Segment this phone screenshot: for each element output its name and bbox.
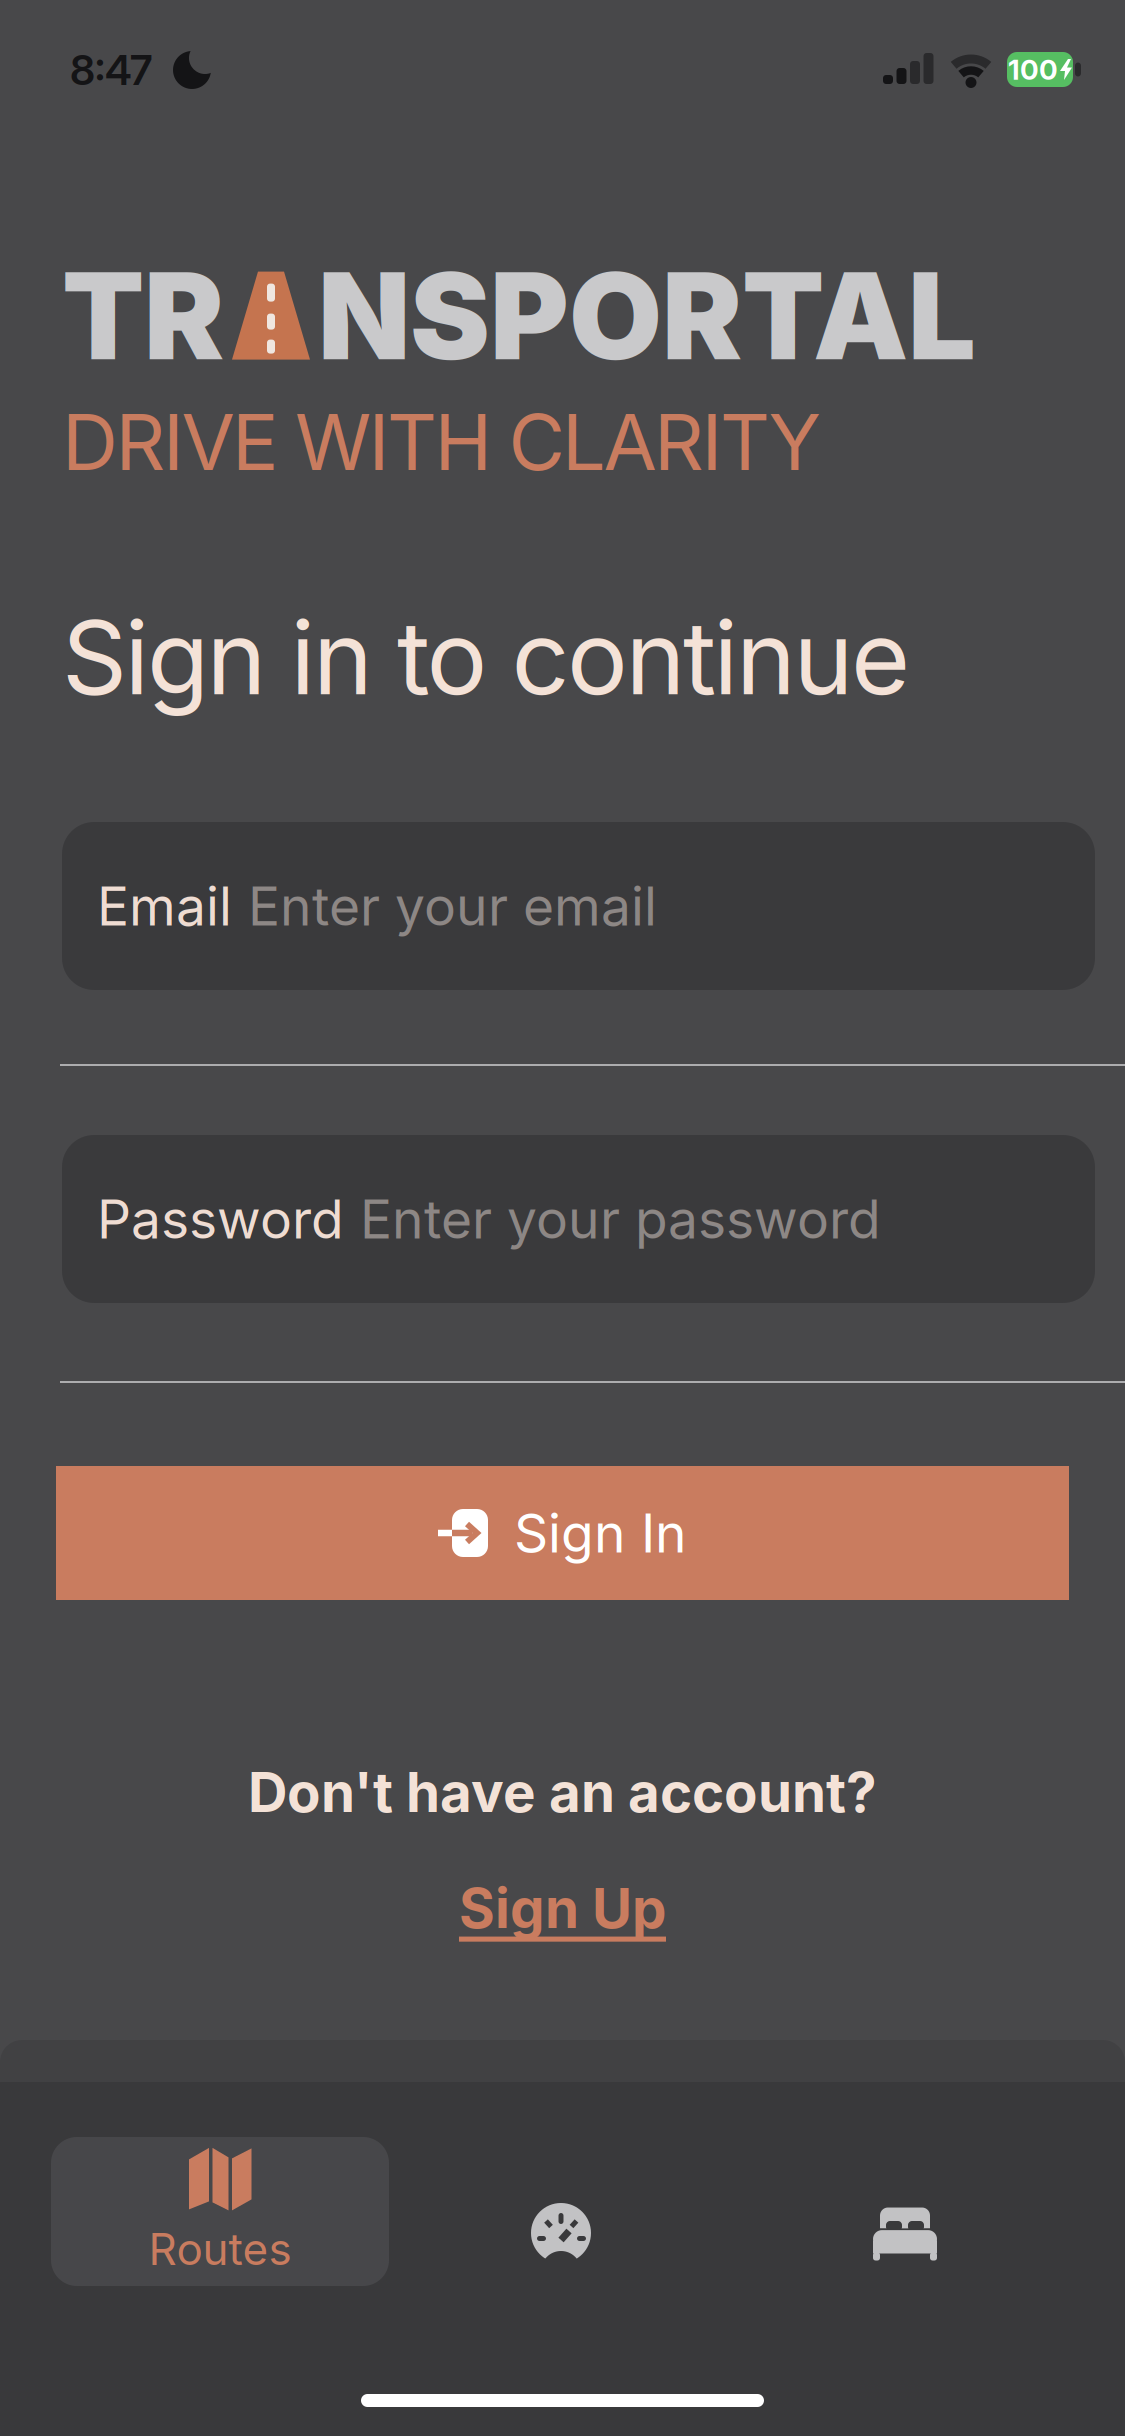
staticText: 8:47 (70, 45, 152, 95)
staticText: Email (97, 874, 232, 938)
staticText: Sign in to continue (62, 596, 910, 719)
button[interactable] (845, 2174, 965, 2294)
staticText: Sign In (514, 1501, 687, 1565)
button[interactable]: Password (62, 1135, 1095, 1303)
staticText: Enter your password (360, 1187, 881, 1251)
button[interactable]: Routes (51, 2137, 389, 2286)
staticText: 100 (1008, 53, 1058, 86)
staticText: Routes (148, 2222, 291, 2276)
button[interactable]: Sign Up (459, 1875, 666, 1941)
button[interactable]: Email (62, 822, 1095, 990)
staticText: TR (62, 243, 224, 388)
staticText: Password (97, 1187, 344, 1251)
button[interactable]: Sign In (56, 1466, 1069, 1600)
staticText: Don't have an account? (248, 1759, 877, 1825)
staticText: Enter your email (248, 874, 657, 938)
staticText: NSPORTAL (318, 243, 976, 388)
staticText: DRIVE WITH CLARITY (62, 395, 820, 489)
staticText: Sign Up (459, 1875, 666, 1941)
button[interactable] (501, 2174, 621, 2294)
